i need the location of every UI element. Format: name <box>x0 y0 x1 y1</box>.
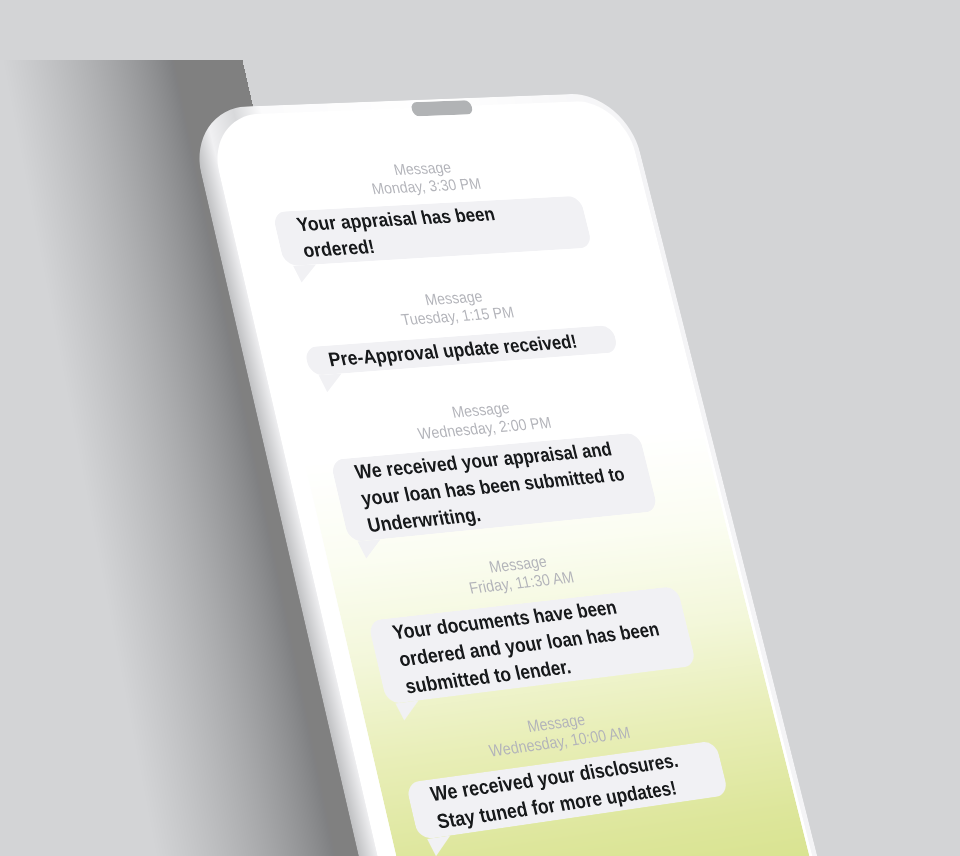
button[interactable]: Your appraisal has been ordered! <box>272 196 593 266</box>
button[interactable]: Pre-Approval update received! <box>304 325 619 376</box>
staticText: Tuesday, 1:15 PM <box>399 303 516 329</box>
staticText: Monday, 3:30 PM <box>370 174 483 198</box>
staticText: Message <box>450 398 511 421</box>
staticText: Your appraisal has been ordered! <box>295 200 568 262</box>
button[interactable]: We received your appraisal and your loan… <box>330 432 658 542</box>
staticText: Message <box>392 158 453 178</box>
staticText: Your documents have been ordered and you… <box>390 592 672 698</box>
staticText: Wednesday, 2:00 PM <box>416 413 553 443</box>
button[interactable]: We received your disclosures. Stay tuned… <box>405 740 729 840</box>
staticText: We received your appraisal and your loan… <box>353 438 633 537</box>
staticText: Message <box>487 552 549 576</box>
staticText: Wednesday, 10:00 AM <box>487 723 632 760</box>
staticText: We received your disclosures. Stay tuned… <box>428 747 704 833</box>
staticText: Message <box>423 287 484 309</box>
staticText: Message <box>525 710 587 736</box>
staticText: Pre-Approval update received! <box>326 331 579 371</box>
other: Earpiece speaker <box>410 100 474 116</box>
staticText: Friday, 11:30 AM <box>467 567 576 597</box>
button[interactable]: Your documents have been ordered and you… <box>367 586 697 704</box>
